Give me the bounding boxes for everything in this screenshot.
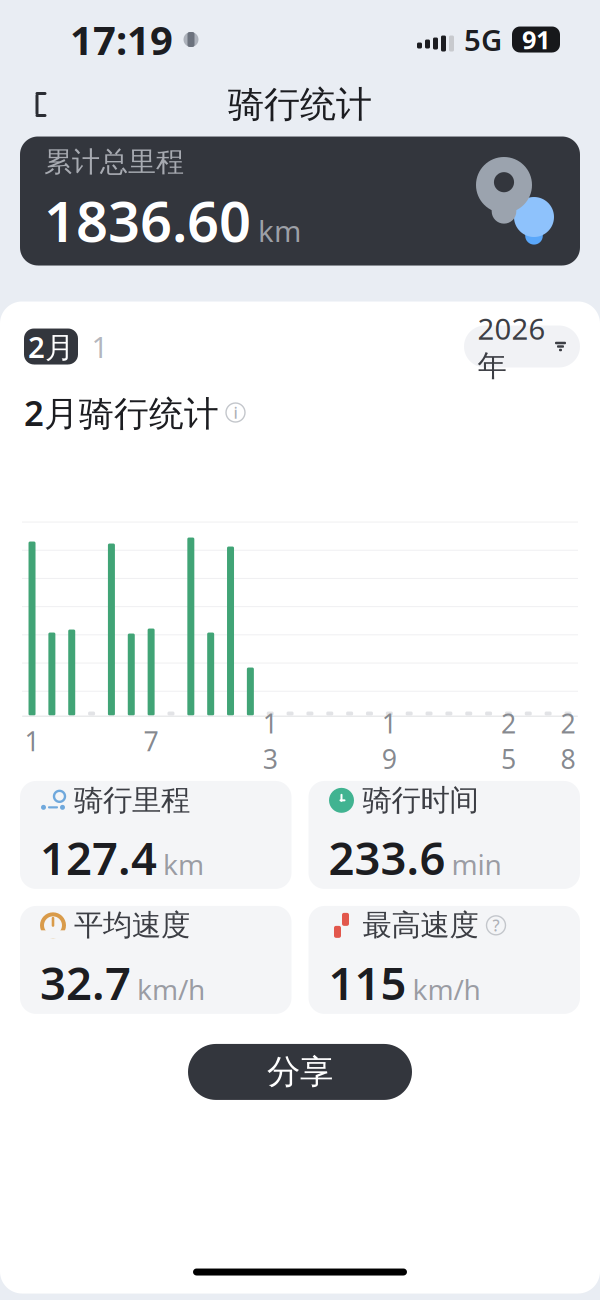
staticText: 127.4 (40, 827, 157, 888)
button[interactable]: 平均速度 (20, 906, 291, 1014)
staticText: km/h (137, 971, 205, 1008)
staticText: 骑行统计 (228, 82, 372, 127)
staticText: 骑行时间 (362, 782, 478, 818)
staticText: 累计总里程 (44, 145, 184, 179)
staticText: 115 (328, 952, 406, 1013)
button[interactable]: 2月 (24, 328, 78, 364)
staticText: 91 (522, 23, 550, 56)
button[interactable]: 最高速度 (308, 906, 580, 1014)
staticText: 233.6 (328, 827, 445, 888)
staticText: 2月 (28, 327, 74, 366)
button[interactable]: 分享 (188, 1044, 412, 1100)
staticText: 1836.60 (44, 183, 251, 257)
staticText: 19 (382, 705, 397, 776)
button[interactable]: 骑行时间 (308, 781, 580, 889)
staticText: 17:19 (70, 13, 173, 66)
staticText: 25 (501, 705, 516, 776)
staticText: 7 (144, 723, 159, 759)
staticText: km/h (412, 971, 480, 1008)
button[interactable]: 1 (78, 328, 122, 364)
staticText: 2026年 (477, 309, 545, 384)
staticText: 1 (91, 327, 108, 366)
staticText: km (163, 846, 204, 883)
button[interactable]: 骑行里程 (20, 781, 291, 889)
staticText: 最高速度 (362, 907, 478, 943)
staticText: i (233, 402, 237, 423)
button[interactable]: 返回 (12, 75, 70, 133)
staticText: 1 (24, 723, 39, 759)
staticText: 13 (263, 705, 278, 776)
button[interactable]: 2026年 (464, 325, 580, 367)
staticText: 分享 (267, 1051, 333, 1092)
staticText: 32.7 (40, 952, 131, 1013)
staticText: 28 (560, 705, 575, 776)
staticText: 5G (464, 20, 502, 59)
staticText: min (451, 846, 501, 883)
staticText: km (258, 211, 301, 250)
staticText: 骑行里程 (74, 782, 190, 818)
staticText: ? (492, 915, 499, 936)
staticText: 2月骑行统计 (24, 389, 219, 435)
staticText: 平均速度 (74, 907, 190, 943)
